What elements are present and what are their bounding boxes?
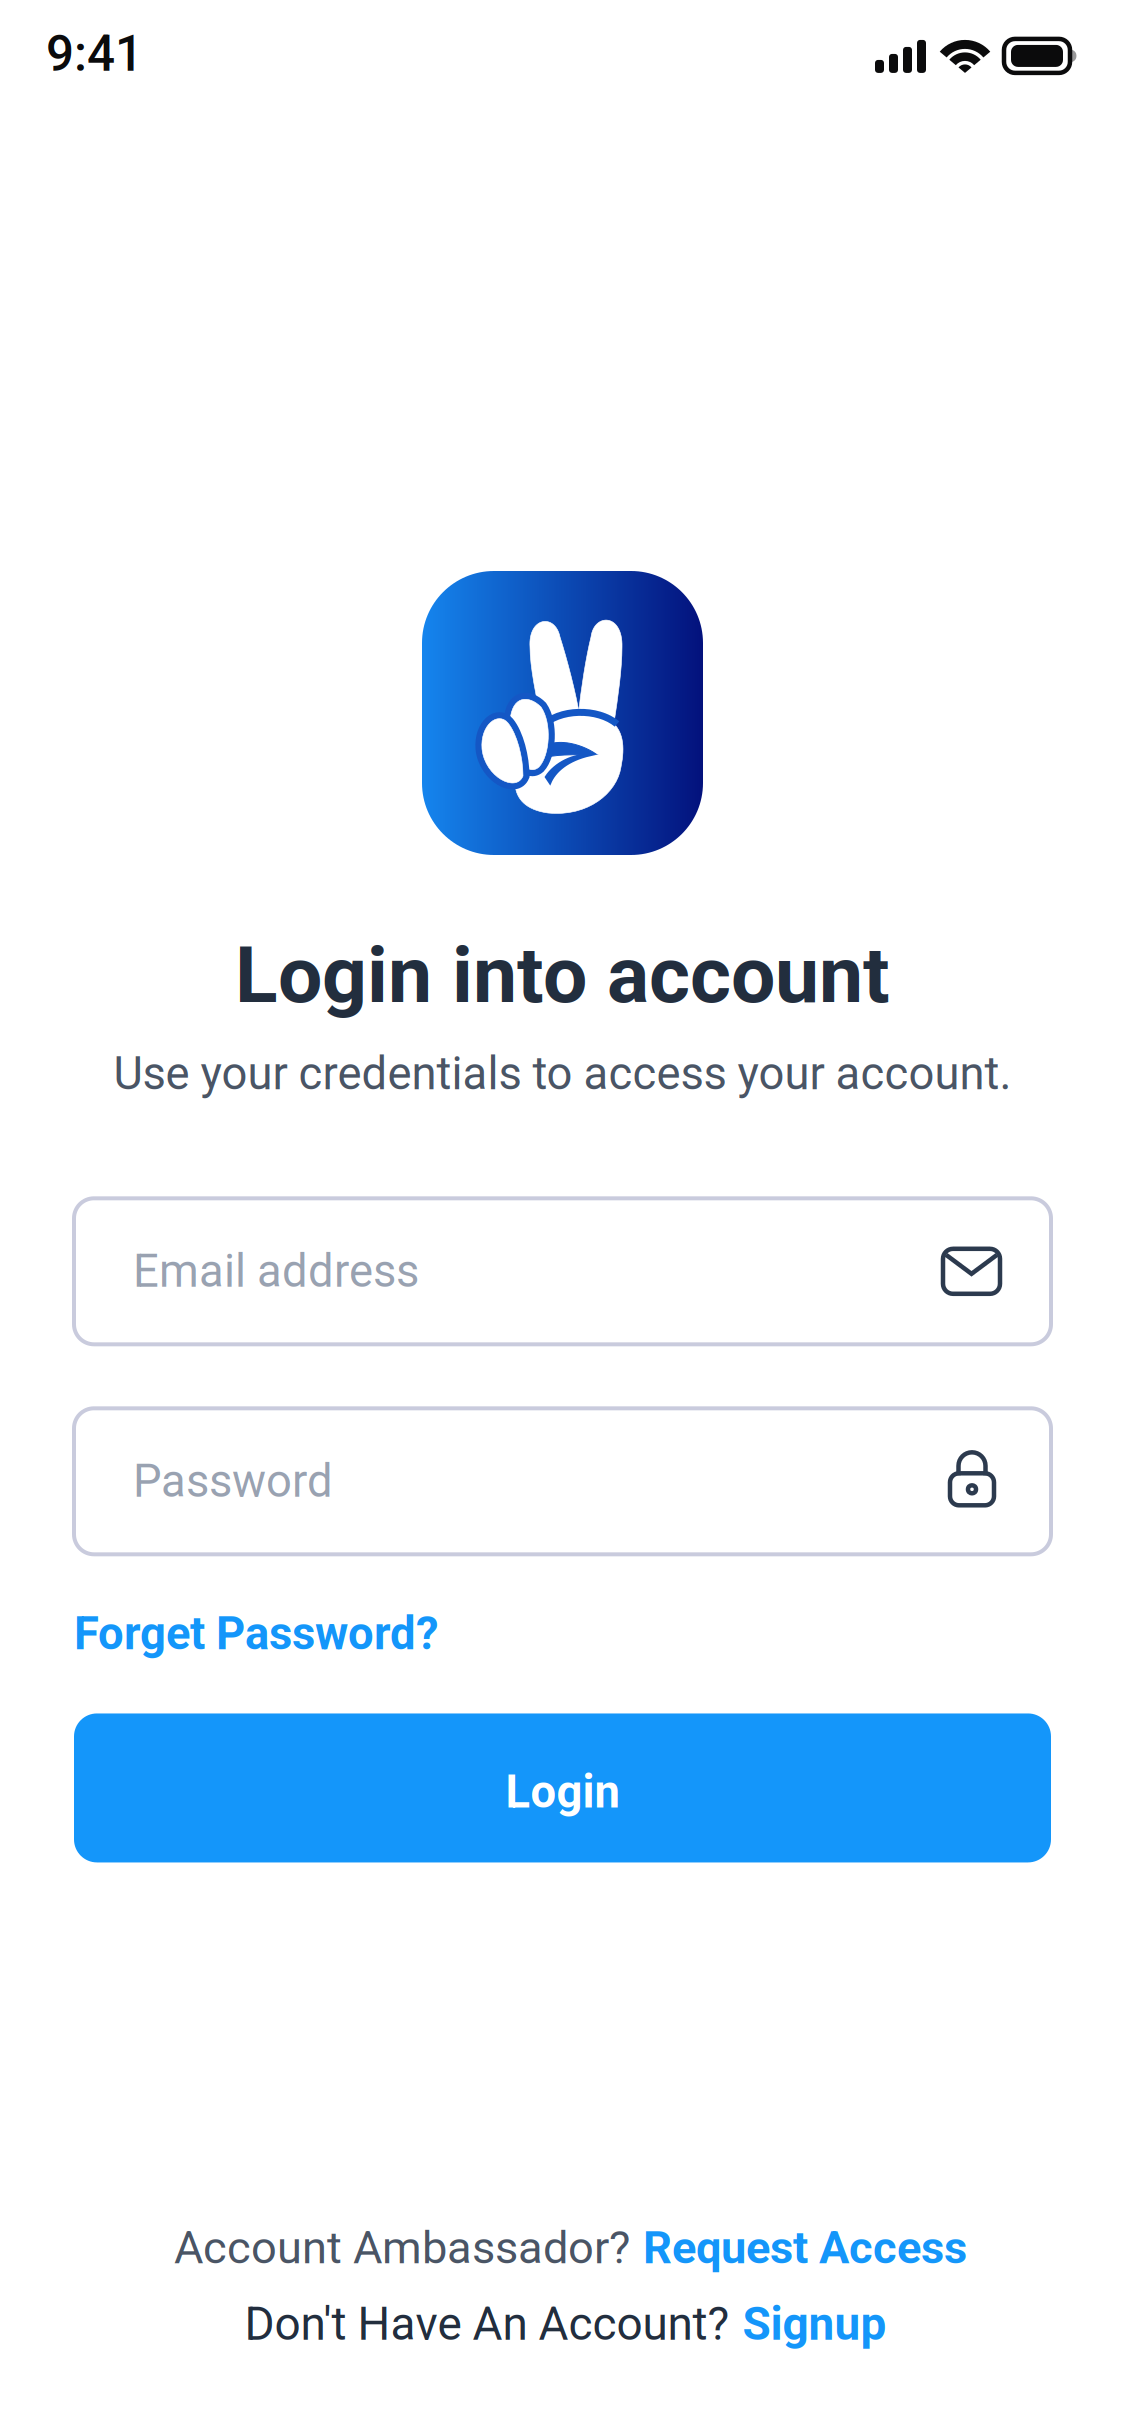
staticText: Password	[133, 1455, 333, 1508]
staticText: Email address	[133, 1245, 419, 1298]
button[interactable]: Forget Password?	[74, 1607, 1051, 1660]
staticText: Don't Have An Account?	[244, 2297, 729, 2351]
staticText: Login into account	[235, 929, 890, 1021]
button[interactable]: Login	[74, 1713, 1051, 1862]
staticText: Login	[505, 1765, 619, 1818]
button[interactable]: Request Access	[643, 2221, 967, 2274]
button[interactable]: Password	[74, 1408, 1051, 1554]
staticText: Account Ambassador?	[174, 2221, 630, 2274]
button[interactable]: Signup	[742, 2297, 886, 2351]
staticText: Forget Password?	[74, 1607, 439, 1660]
staticText: Use your credentials to access your acco…	[113, 1047, 1011, 1100]
staticText: Signup	[742, 2297, 886, 2351]
staticText: 9:41	[46, 25, 143, 83]
staticText: Request Access	[643, 2221, 967, 2274]
button[interactable]: Email address	[74, 1198, 1051, 1344]
